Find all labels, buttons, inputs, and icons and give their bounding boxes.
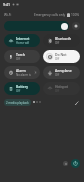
staticText: Off xyxy=(16,57,21,61)
staticText: 2 media playback xyxy=(6,101,29,105)
staticText: Home wifi 2.4GHz xyxy=(16,41,37,45)
button[interactable]: Bluetooth xyxy=(43,34,80,47)
staticText: Off xyxy=(16,89,21,93)
button[interactable]: Do Not Disturb xyxy=(43,50,80,63)
staticText: Off xyxy=(55,57,60,61)
staticText: Bluetooth xyxy=(55,36,72,41)
button[interactable]: Battery saver xyxy=(4,82,40,95)
staticText: Torch xyxy=(16,52,25,57)
button[interactable]: Hotspot xyxy=(43,82,80,95)
staticText: Aeroplane mode xyxy=(55,68,77,73)
staticText: Battery saver xyxy=(16,84,37,89)
button[interactable]: Brightness xyxy=(4,21,69,31)
staticText: Off xyxy=(55,41,60,45)
staticText: Off xyxy=(55,73,60,77)
staticText: Emergency calls only xyxy=(34,13,66,17)
staticText: No alarm is set xyxy=(16,73,34,77)
staticText: 100% xyxy=(71,13,80,17)
button[interactable]: Settings xyxy=(63,161,68,166)
staticText: Wi-Fi xyxy=(4,13,12,17)
button[interactable]: Power xyxy=(71,159,80,168)
staticText: 9:41 xyxy=(3,2,10,7)
button[interactable]: Aeroplane mode xyxy=(43,66,80,79)
button[interactable]: Internet xyxy=(4,34,40,47)
staticText: Do Not Disturb xyxy=(55,52,77,57)
staticText: Internet xyxy=(16,36,30,41)
button[interactable]: Alarm xyxy=(4,66,40,79)
button[interactable]: Torch xyxy=(4,50,40,63)
button[interactable]: 2 media playback xyxy=(4,99,31,106)
staticText: Hotspot xyxy=(55,84,69,89)
button[interactable]: Auto brightness xyxy=(72,22,80,30)
button[interactable]: Edit tiles xyxy=(73,99,80,106)
staticText: Alarm xyxy=(16,68,26,73)
staticText: Off xyxy=(55,89,60,93)
